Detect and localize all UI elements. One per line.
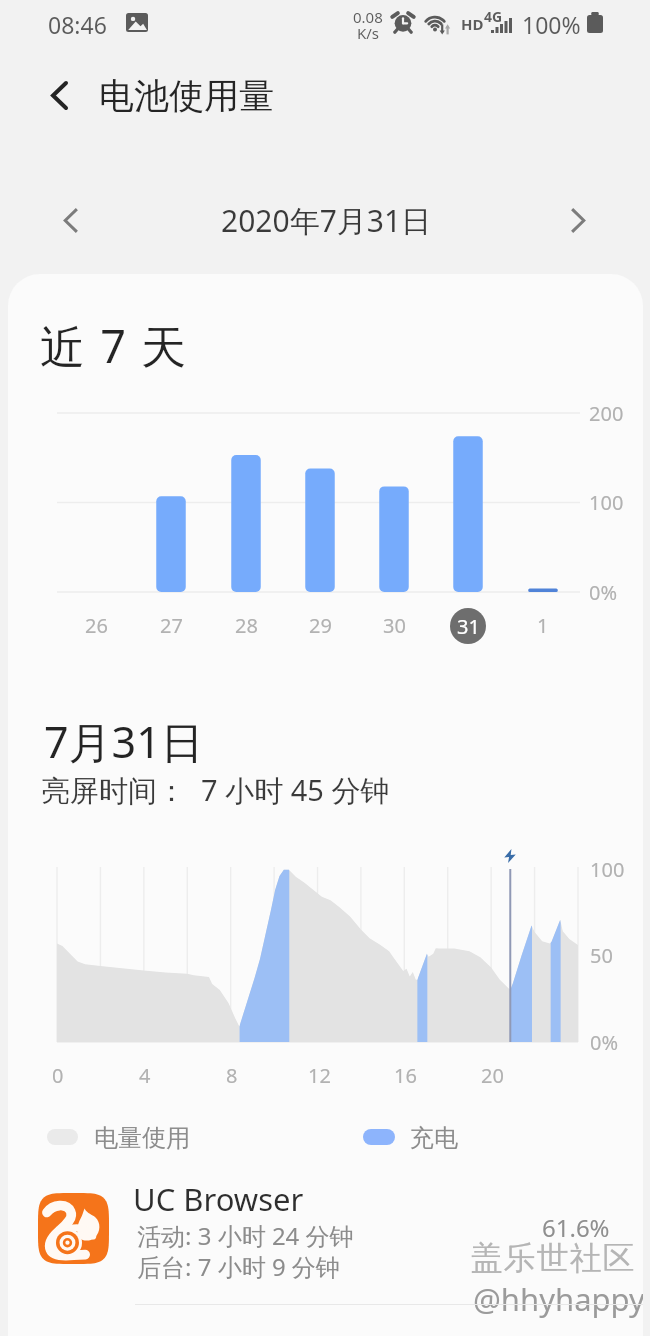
staticText: 16 xyxy=(394,1062,417,1089)
staticText: 0% xyxy=(590,1029,619,1056)
staticText: 20 xyxy=(481,1062,504,1089)
staticText: 电池使用量 xyxy=(99,74,274,118)
staticText: 后台: 7 小时 9 分钟 xyxy=(137,1250,340,1283)
staticText: 2020年7月31日 xyxy=(221,200,432,241)
staticText: 0 xyxy=(52,1062,64,1089)
staticText: 0% xyxy=(589,579,618,606)
staticText: 200 xyxy=(589,400,624,427)
staticText: 活动: 3 小时 24 分钟 xyxy=(137,1219,354,1252)
staticText: 29 xyxy=(309,612,332,639)
button[interactable]: UC Browser xyxy=(8,1180,643,1336)
staticText: 61.6% xyxy=(542,1211,610,1244)
staticText: 电量使用 xyxy=(94,1123,190,1153)
staticText: K/s xyxy=(357,23,380,43)
staticText: UC Browser xyxy=(133,1178,304,1220)
staticText: 100 xyxy=(589,489,624,516)
staticText: 12 xyxy=(308,1062,331,1089)
staticText: 31 xyxy=(457,613,480,640)
staticText: 0.08 xyxy=(353,7,383,27)
staticText: 27 xyxy=(160,612,183,639)
button[interactable]: Next day xyxy=(550,192,606,248)
staticText: 充电 xyxy=(410,1123,458,1153)
staticText: 近 7 天 xyxy=(40,315,189,376)
staticText: 亮屏时间： 7 小时 45 分钟 xyxy=(41,770,390,810)
staticText: 100 xyxy=(590,856,625,883)
staticText: 30 xyxy=(383,612,406,639)
staticText: 100% xyxy=(522,9,581,40)
button[interactable]: Previous day xyxy=(42,192,98,248)
staticText: 50 xyxy=(590,942,613,969)
staticText: 8 xyxy=(226,1062,238,1089)
staticText: @hhyhappy xyxy=(473,1278,643,1320)
staticText: 盖乐世社区 xyxy=(470,1238,635,1278)
staticText: 26 xyxy=(85,612,108,639)
staticText: 1 xyxy=(537,612,549,639)
staticText: 7月31日 xyxy=(44,712,204,771)
staticText: 4G xyxy=(484,7,503,26)
button[interactable]: Back xyxy=(30,67,86,123)
staticText: 4 xyxy=(139,1062,151,1089)
staticText: 08:46 xyxy=(48,9,107,40)
staticText: 28 xyxy=(235,612,258,639)
staticText: HD xyxy=(461,14,484,34)
